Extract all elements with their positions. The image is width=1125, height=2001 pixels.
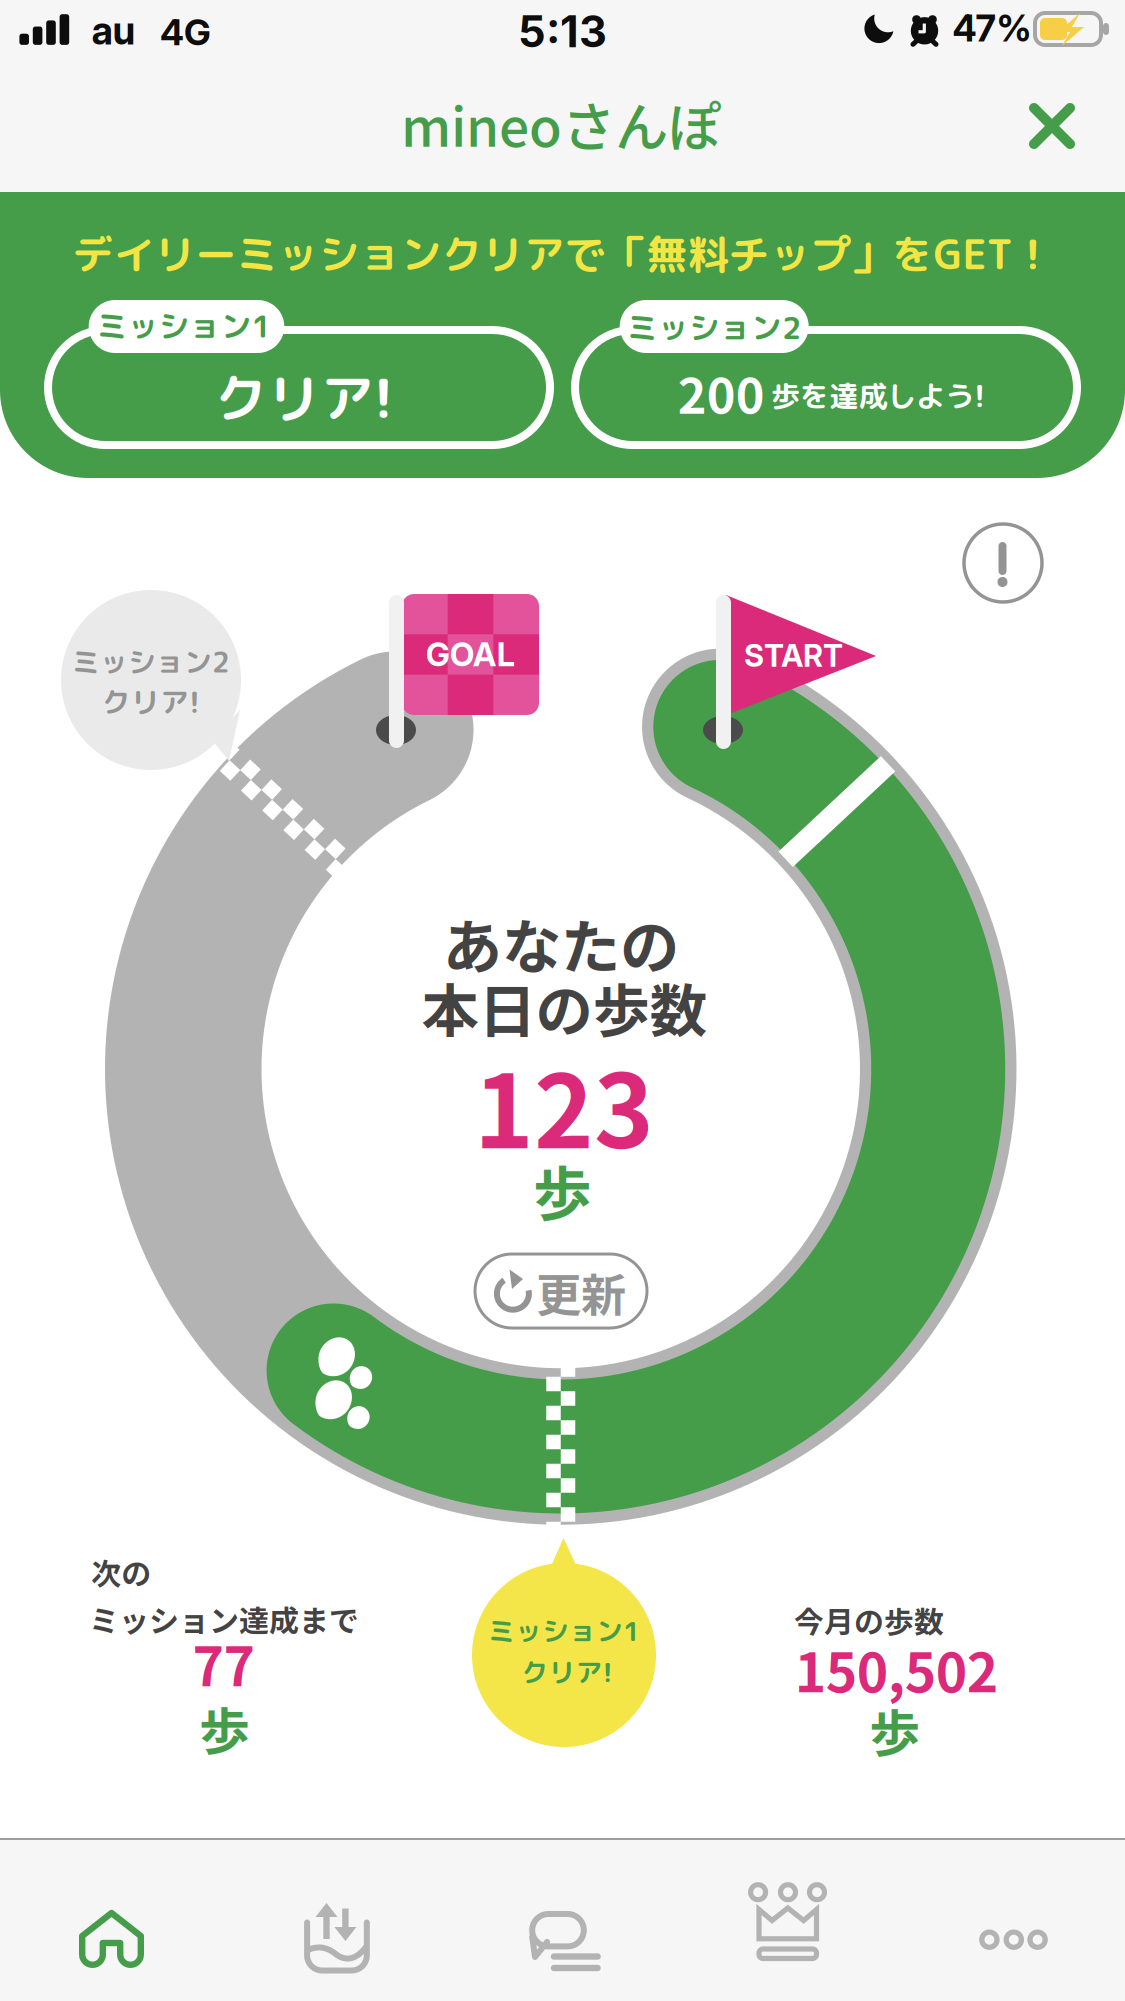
staticText: 歩を達成しよう! [771, 375, 985, 416]
staticText: 歩 [199, 1691, 250, 1765]
staticText: 150,502 [795, 1630, 998, 1708]
staticText: ミッション2 [72, 642, 230, 682]
button[interactable]: Home [0, 1838, 225, 2001]
staticText: 5:13 [518, 5, 607, 58]
button[interactable]: Chat [450, 1838, 675, 2001]
staticText: 4G [160, 10, 211, 54]
button[interactable]: クリア! [44, 296, 554, 453]
staticText: 歩 [869, 1693, 920, 1767]
staticText: デイリーミッションクリアで「無料チップ」をGET！ [72, 226, 1053, 282]
staticText: ミッション1 [96, 304, 271, 347]
staticText: 本日の歩数 [421, 965, 706, 1048]
button[interactable]: Information [958, 518, 1048, 608]
staticText: 123 [474, 1031, 654, 1177]
staticText: ミッション2 [627, 306, 802, 349]
staticText: au [91, 7, 135, 54]
staticText: 次の [91, 1550, 151, 1594]
staticText: クリア! [102, 682, 200, 722]
staticText: START [744, 637, 843, 674]
staticText: 77 [192, 1624, 254, 1702]
button[interactable]: 200 [571, 296, 1081, 453]
button[interactable]: Data [225, 1838, 450, 2001]
button[interactable]: Close [1000, 74, 1104, 178]
staticText: クリア! [214, 360, 393, 435]
staticText: ミッション達成まで [89, 1597, 359, 1641]
staticText: 歩 [533, 1147, 592, 1232]
staticText: ミッション1 [488, 1612, 640, 1650]
staticText: クリア! [521, 1653, 612, 1691]
button[interactable]: Ranking [675, 1838, 900, 2001]
button[interactable]: 更新 [474, 1253, 648, 1329]
staticText: あなたの [443, 900, 679, 986]
staticText: 47% [952, 6, 1031, 50]
staticText: 200 [678, 357, 765, 428]
button[interactable]: More [900, 1838, 1125, 2001]
staticText: GOAL [426, 635, 515, 674]
staticText: mineoさんぽ [401, 85, 721, 162]
staticText: 今月の歩数 [794, 1598, 944, 1642]
staticText: 更新 [536, 1259, 626, 1325]
